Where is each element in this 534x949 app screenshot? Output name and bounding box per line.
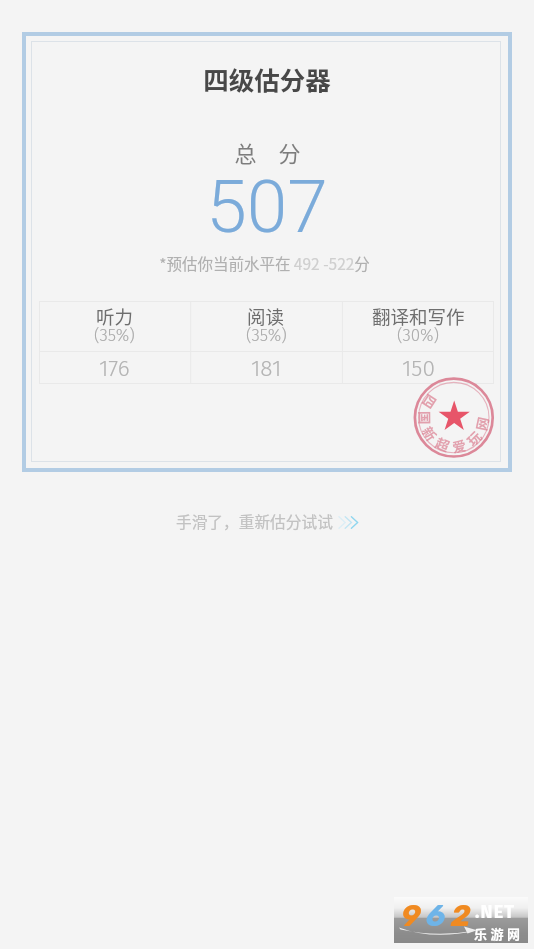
staticText: 手滑了，重新估分试试 [176, 510, 333, 533]
staticText: 听力 [96, 303, 134, 330]
staticText: 四级估分器 [203, 60, 331, 97]
staticText: 181 [251, 355, 282, 382]
staticText: *预估你当前水平在 492 -522分 [159, 252, 370, 274]
staticText: 乐游网 [474, 924, 524, 943]
staticText: 阅读 [247, 303, 285, 330]
button[interactable]: 手滑了，重新估分试试 [0, 508, 534, 534]
button[interactable]: 听力 [39, 301, 190, 351]
staticText: .NET [475, 901, 516, 923]
other: Approved stamp [413, 377, 495, 459]
staticText: 176 [99, 355, 130, 382]
button[interactable]: 阅读 [190, 301, 342, 351]
staticText: (30%) [397, 325, 440, 345]
staticText: 507 [206, 164, 328, 250]
staticText: (35%) [94, 325, 135, 345]
staticText: 总 分 [234, 136, 301, 168]
button[interactable]: 150 [342, 352, 494, 384]
staticText: 翻译和写作 [372, 303, 465, 330]
button[interactable]: 翻译和写作 [342, 301, 494, 351]
staticText: 150 [402, 355, 435, 382]
button[interactable]: 181 [190, 352, 342, 384]
button[interactable]: 176 [39, 352, 190, 384]
staticText: 962 [401, 898, 476, 934]
staticText: (35%) [246, 325, 287, 345]
